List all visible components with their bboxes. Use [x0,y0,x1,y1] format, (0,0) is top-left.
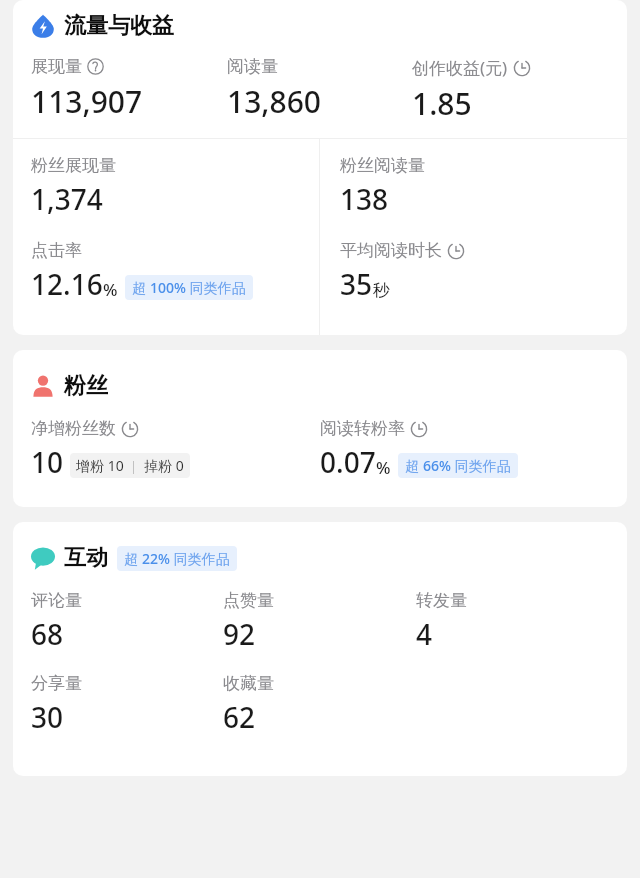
button[interactable]: 收藏量 [223,673,416,736]
staticText: 粉丝 [64,372,108,400]
staticText: 0.07 [320,443,376,481]
staticText: 68 [31,615,64,653]
staticText: 粉丝阅读量 [340,155,425,176]
staticText: 138 [340,180,389,218]
staticText: 超 [124,549,142,568]
button[interactable]: Help [87,58,104,75]
staticText: 同类作品 [451,456,511,475]
staticText: 秒 [373,280,390,301]
staticText: 展现量 [31,56,82,77]
button[interactable]: 点赞量 [223,590,416,653]
button[interactable]: 增粉 10 [70,453,190,478]
staticText: 1.85 [412,83,472,124]
staticText: 66% [423,456,451,475]
staticText: 1,374 [31,180,103,218]
staticText: 4 [416,615,433,653]
staticText: 同类作品 [186,278,246,297]
staticText: 阅读转粉率 [320,418,405,439]
staticText: 13,860 [227,81,321,122]
button[interactable]: 超 [117,546,237,571]
staticText: 100% [150,278,186,297]
button[interactable]: 流量与收益 [31,12,174,40]
button[interactable]: 评论量 [31,590,223,653]
staticText: 62 [223,698,256,736]
staticText: 12.16 [31,265,103,303]
button[interactable]: History [447,242,465,260]
staticText: % [376,456,391,479]
staticText: 点赞量 [223,590,274,611]
staticText: 互动 [64,544,108,572]
staticText: 净增粉丝数 [31,418,116,439]
staticText: | [124,458,144,474]
staticText: 22% [142,549,170,568]
staticText: 同类作品 [170,549,230,568]
button[interactable]: 超 [398,453,518,478]
staticText: 平均阅读时长 [340,240,442,261]
staticText: 点击率 [31,240,82,261]
staticText: 创作收益(元) [412,56,508,79]
button[interactable]: 分享量 [31,673,223,736]
staticText: 粉丝展现量 [31,155,116,176]
staticText: 阅读量 [227,56,278,77]
staticText: 35 [340,265,373,303]
staticText: 转发量 [416,590,467,611]
button[interactable]: 转发量 [416,590,609,653]
staticText: 超 [132,278,150,297]
button[interactable]: History [410,420,428,438]
staticText: 超 [405,456,423,475]
staticText: 分享量 [31,673,82,694]
staticText: 掉粉 0 [144,456,184,475]
button[interactable]: 互动 [31,544,237,572]
staticText: % [103,278,118,301]
staticText: 收藏量 [223,673,274,694]
staticText: 增粉 10 [76,456,124,475]
button[interactable]: 粉丝 [31,372,108,400]
staticText: 评论量 [31,590,82,611]
staticText: 113,907 [31,81,143,122]
staticText: 92 [223,615,256,653]
button[interactable]: 超 [125,275,253,300]
button[interactable]: History [513,59,531,77]
staticText: 30 [31,698,64,736]
button[interactable]: History [121,420,139,438]
staticText: 流量与收益 [64,12,174,40]
staticText: 10 [31,443,64,481]
